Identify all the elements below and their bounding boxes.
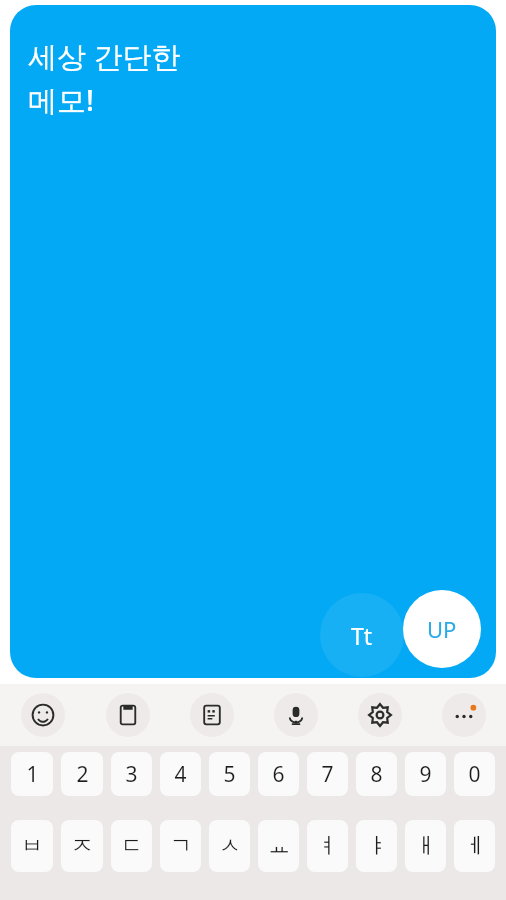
staticText: ㄷ (121, 832, 143, 860)
staticText: 1 (26, 760, 39, 789)
button[interactable]: ㅈ (61, 820, 103, 872)
button[interactable]: ㅕ (307, 820, 348, 872)
button[interactable]: 4 (160, 752, 201, 796)
staticText: ㅛ (268, 832, 290, 860)
button[interactable]: 세상 간단한 메모! (10, 5, 496, 678)
button[interactable]: 1 (11, 752, 53, 796)
button[interactable]: 5 (209, 752, 250, 796)
button[interactable]: 8 (356, 752, 397, 796)
staticText: 7 (321, 760, 334, 789)
button[interactable]: Text style (320, 593, 404, 677)
staticText: ㅂ (21, 832, 43, 860)
button[interactable]: Stickers (170, 684, 254, 746)
staticText: 2 (76, 760, 89, 789)
staticText: 8 (370, 760, 383, 789)
button[interactable]: UP (403, 590, 481, 668)
button[interactable]: 7 (307, 752, 348, 796)
staticText: ㅑ (366, 832, 388, 860)
button[interactable]: ㅔ (454, 820, 495, 872)
staticText: ㅐ (415, 832, 437, 860)
staticText: UP (427, 614, 457, 644)
button[interactable]: ㄱ (160, 820, 201, 872)
staticText: 세상 간단한 메모! (28, 36, 181, 120)
staticText: 0 (468, 760, 481, 789)
button[interactable]: Clipboard (85, 684, 170, 746)
staticText: ㄱ (170, 832, 192, 860)
button[interactable]: 3 (111, 752, 152, 796)
button[interactable]: 9 (405, 752, 446, 796)
button[interactable]: 0 (454, 752, 495, 796)
staticText: ㅕ (317, 832, 339, 860)
staticText: 6 (272, 760, 285, 789)
staticText: Tt (351, 620, 373, 651)
button[interactable]: More options (422, 684, 506, 746)
staticText: ㅔ (464, 832, 486, 860)
button[interactable]: Settings (338, 684, 422, 746)
button[interactable]: ㄷ (111, 820, 152, 872)
button[interactable]: ㅛ (258, 820, 299, 872)
button[interactable]: ㅑ (356, 820, 397, 872)
button[interactable]: ㅅ (209, 820, 250, 872)
staticText: 4 (174, 760, 187, 789)
staticText: ㅅ (219, 832, 241, 860)
button[interactable]: ㅐ (405, 820, 446, 872)
button[interactable]: Voice input (254, 684, 338, 746)
staticText: 9 (419, 760, 432, 789)
staticText: 3 (125, 760, 138, 789)
button[interactable]: 6 (258, 752, 299, 796)
button[interactable]: Emoji (0, 684, 85, 746)
staticText: 5 (223, 760, 236, 789)
button[interactable]: 2 (61, 752, 103, 796)
staticText: ㅈ (71, 832, 93, 860)
button[interactable]: ㅂ (11, 820, 53, 872)
